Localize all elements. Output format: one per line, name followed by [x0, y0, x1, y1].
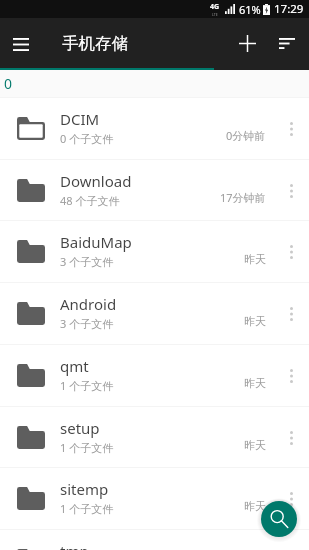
staticText: 61% — [239, 2, 261, 17]
staticText: BaiduMap — [60, 232, 132, 252]
staticText: 1 个子文件 — [60, 378, 114, 393]
staticText: 0 个子文件 — [60, 131, 114, 146]
staticText: Download — [60, 171, 132, 191]
staticText: 昨天 — [244, 314, 266, 328]
button[interactable]: More options — [277, 160, 305, 221]
button[interactable]: Search — [261, 501, 297, 537]
staticText: tmp — [60, 541, 89, 550]
staticText: DCIM — [60, 109, 100, 129]
button[interactable]: tmp — [0, 530, 309, 550]
staticText: 1 个子文件 — [60, 440, 114, 455]
staticText: 昨天 — [244, 376, 266, 390]
staticText: qmt — [60, 356, 89, 376]
staticText: 昨天 — [244, 252, 266, 266]
button[interactable]: More options — [277, 407, 305, 468]
staticText: 昨天 — [244, 438, 266, 452]
staticText: 手机存储 — [62, 33, 128, 54]
button[interactable]: Download — [0, 160, 309, 221]
staticText: sitemp — [60, 479, 109, 499]
button[interactable]: Menu — [5, 27, 37, 59]
staticText: 0 — [4, 74, 13, 93]
button[interactable]: More options — [277, 221, 305, 282]
staticText: setup — [60, 418, 100, 438]
button[interactable]: DCIM — [0, 98, 309, 159]
staticText: 48 个子文件 — [60, 193, 120, 208]
button[interactable]: setup — [0, 407, 309, 468]
button[interactable]: More options — [277, 98, 305, 159]
button[interactable]: Sort — [267, 23, 307, 63]
staticText: 0分钟前 — [226, 128, 266, 143]
button[interactable]: qmt — [0, 345, 309, 406]
staticText: 3 个子文件 — [60, 254, 114, 269]
staticText: 昨天 — [244, 499, 266, 513]
button[interactable]: More options — [277, 468, 305, 529]
staticText: 17分钟前 — [220, 190, 266, 205]
staticText: 4G — [210, 2, 220, 12]
button[interactable]: BaiduMap — [0, 221, 309, 282]
staticText: 3 个子文件 — [60, 316, 114, 331]
button[interactable]: Android — [0, 283, 309, 344]
button[interactable]: More options — [277, 283, 305, 344]
staticText: Android — [60, 294, 117, 314]
button[interactable]: Add — [227, 23, 267, 63]
button[interactable]: sitemp — [0, 468, 309, 529]
button[interactable]: More options — [277, 345, 305, 406]
staticText: 17:29 — [274, 1, 304, 17]
staticText: LTE — [212, 12, 218, 17]
staticText: 1 个子文件 — [60, 501, 114, 516]
button[interactable]: More options — [277, 530, 305, 550]
